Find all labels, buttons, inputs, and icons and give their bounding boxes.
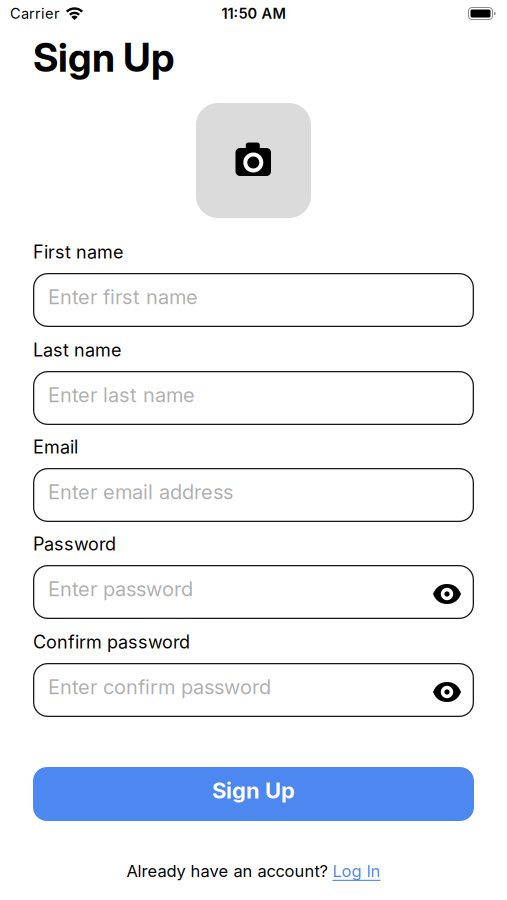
staticText: Already have an account? <box>126 861 327 881</box>
staticText: Enter last name <box>48 383 195 407</box>
staticText: First name <box>33 241 123 263</box>
button[interactable]: Show password <box>433 678 461 702</box>
staticText: Enter first name <box>48 285 198 309</box>
button[interactable]: Enter confirm password <box>33 663 474 717</box>
staticText: Enter confirm password <box>48 675 271 699</box>
button[interactable]: Enter email address <box>33 468 474 522</box>
staticText: Enter password <box>48 577 193 601</box>
button[interactable]: Enter last name <box>33 371 474 425</box>
staticText: Confirm password <box>33 631 190 653</box>
button[interactable]: Add profile photo <box>196 103 311 218</box>
button[interactable]: Enter first name <box>33 273 474 327</box>
staticText: Log In <box>332 861 380 881</box>
staticText: 11:50 AM <box>221 5 285 22</box>
staticText: Sign Up <box>33 34 174 81</box>
staticText: Email <box>33 436 78 458</box>
staticText: Carrier <box>10 5 59 22</box>
staticText: Sign Up <box>212 777 295 804</box>
button[interactable]: Show password <box>433 580 461 604</box>
staticText: Last name <box>33 339 121 361</box>
staticText: Password <box>33 533 116 555</box>
button[interactable]: Enter password <box>33 565 474 619</box>
staticText: Enter email address <box>48 480 233 504</box>
button[interactable]: Sign Up <box>33 767 474 821</box>
button[interactable]: Log In <box>332 861 380 881</box>
